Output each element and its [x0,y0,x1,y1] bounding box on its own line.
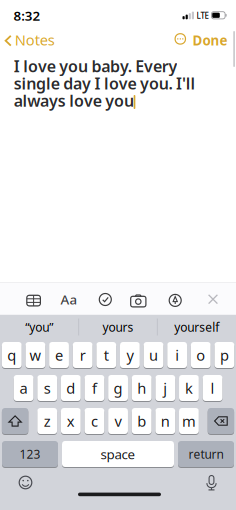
button[interactable]: return [178,441,234,467]
button[interactable]: space [62,441,174,467]
button[interactable]: 123 [2,441,58,467]
button[interactable] [99,293,112,306]
button[interactable]: l [203,375,222,401]
button[interactable]: g [108,375,128,401]
staticText: j [163,378,167,398]
staticText: I love you baby. Every single day I love… [14,55,195,111]
button[interactable] [26,295,41,307]
button[interactable]: “you” [0,314,78,340]
staticText: x [67,411,75,431]
staticText: v [115,411,122,431]
button[interactable]: yours [79,314,157,340]
staticText: Done [192,31,227,49]
button[interactable]: q [2,342,22,368]
staticText: b [137,411,146,431]
button[interactable]: Aa [60,290,77,308]
button[interactable]: u [144,342,163,368]
button[interactable]: r [73,342,93,368]
staticText: g [114,378,123,398]
staticText: Notes [15,30,55,49]
staticText: p [220,345,229,365]
button[interactable]: b [132,408,152,434]
staticText: e [55,345,63,365]
button[interactable]: y [120,342,140,368]
staticText: 8:32 [13,7,40,24]
button[interactable] [204,475,218,490]
button[interactable]: c [84,408,104,434]
staticText: l [211,378,215,398]
button[interactable]: o [191,342,211,368]
button[interactable] [208,294,218,304]
button[interactable] [2,408,28,434]
button[interactable]: d [61,375,81,401]
button[interactable]: t [96,342,116,368]
staticText: y [126,345,133,365]
button[interactable]: i [167,342,187,368]
button[interactable]: j [155,375,175,401]
staticText: f [92,378,97,398]
button[interactable]: v [108,408,128,434]
button[interactable]: f [85,375,104,401]
button[interactable] [18,475,32,489]
staticText: n [161,411,170,431]
button[interactable]: a [14,375,33,401]
staticText: o [196,345,205,365]
staticText: h [137,378,146,398]
button[interactable]: Done [192,31,227,49]
button[interactable]: p [214,342,234,368]
button[interactable]: Notes [0,0,60,52]
button[interactable]: w [25,342,45,368]
button[interactable] [169,294,182,307]
staticText: i [175,345,179,365]
button[interactable]: m [179,408,199,434]
button[interactable]: h [132,375,152,401]
staticText: q [7,345,16,365]
staticText: c [91,411,98,431]
button[interactable]: s [37,375,57,401]
button[interactable] [174,33,186,45]
staticText: “you” [25,319,53,335]
staticText: yourself [174,319,219,335]
button[interactable] [130,294,146,307]
staticText: u [149,345,158,365]
staticText: Aa [60,290,77,308]
staticText: return [188,446,223,462]
staticText: k [185,378,193,398]
button[interactable]: x [61,408,81,434]
button[interactable]: k [179,375,199,401]
staticText: LTE [197,10,209,21]
button[interactable]: e [49,342,69,368]
staticText: 123 [19,446,40,462]
staticText: space [100,445,135,463]
staticText: t [104,345,109,365]
staticText: r [80,345,86,365]
button[interactable] [208,408,234,434]
staticText: a [20,378,28,398]
button[interactable]: z [37,408,57,434]
staticText: z [44,411,51,431]
button[interactable]: yourself [158,314,236,340]
staticText: w [29,345,41,365]
button[interactable]: n [155,408,175,434]
staticText: d [66,378,75,398]
staticText: yours [102,319,133,335]
staticText: m [182,411,196,431]
staticText: s [44,378,51,398]
